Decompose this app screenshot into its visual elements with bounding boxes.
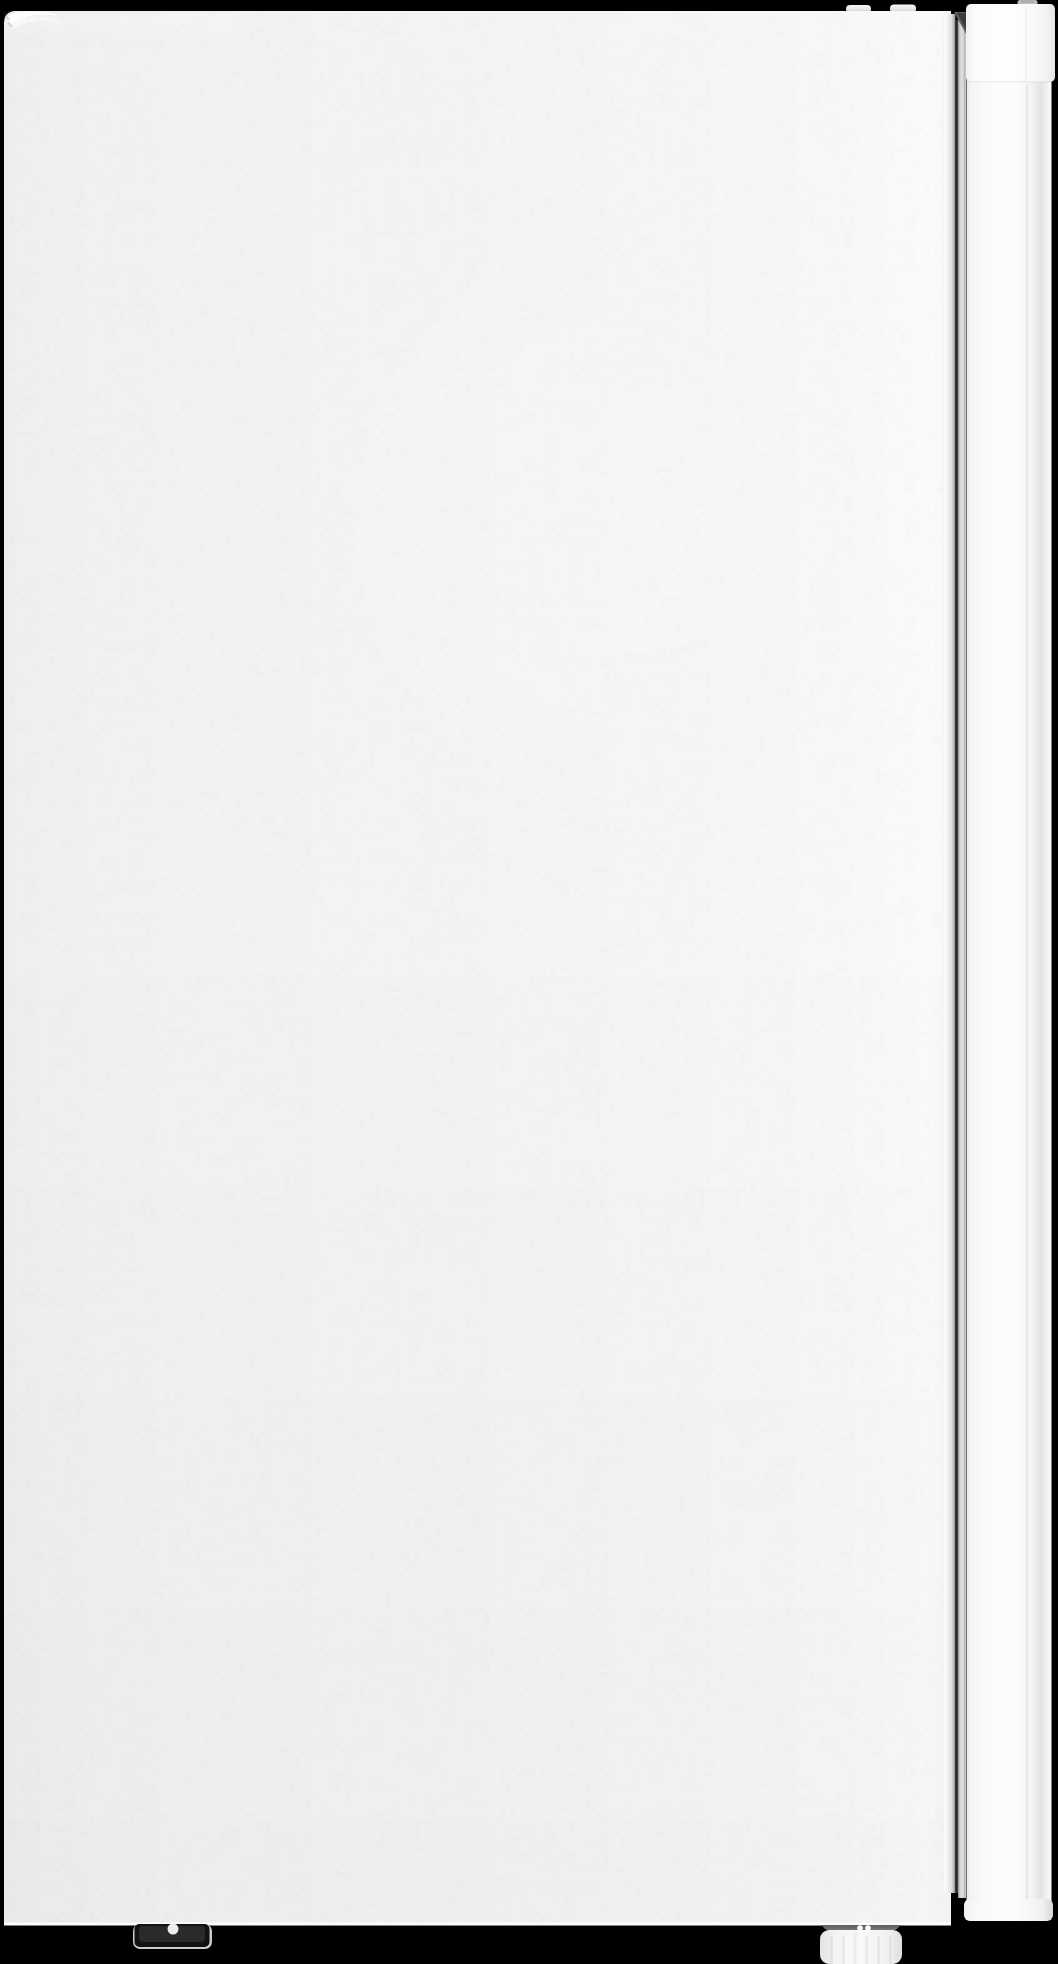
other: Upright freezer product photo [0,0,1058,1964]
button[interactable]: Door handle [961,0,1058,1964]
button[interactable]: Freezer product image, tap to zoom [0,0,1058,1964]
